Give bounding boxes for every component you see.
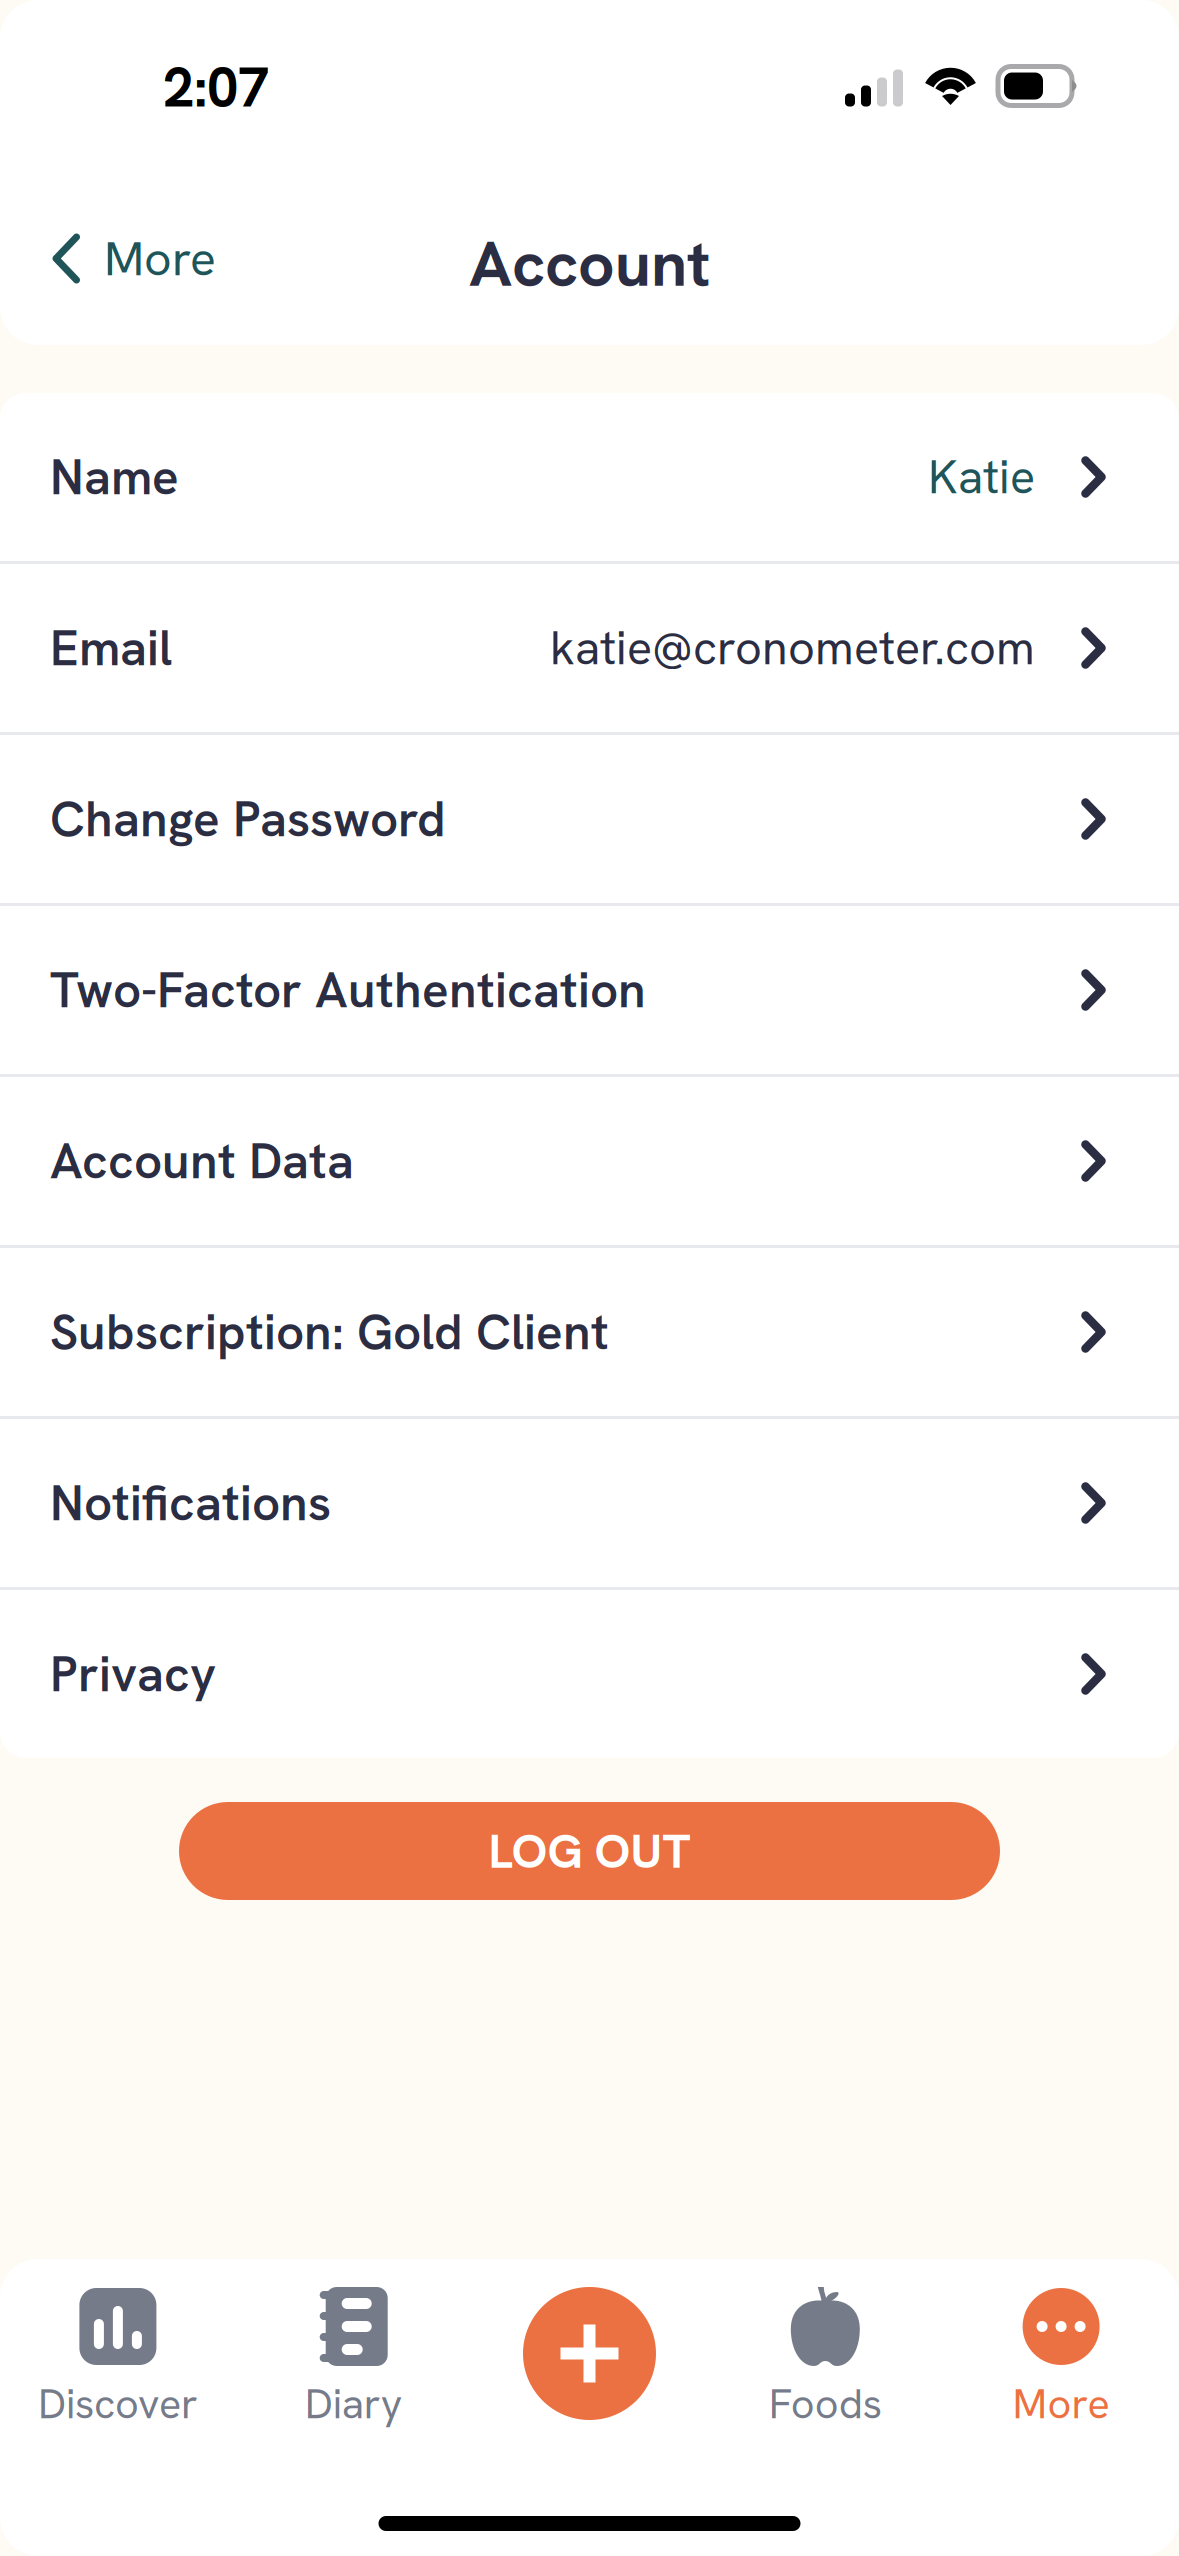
button[interactable]: Privacy bbox=[0, 1590, 1179, 1758]
staticText: katie@cronometer.com bbox=[550, 618, 1035, 678]
button[interactable]: Add entry bbox=[472, 2287, 707, 2447]
button[interactable]: Change Password bbox=[0, 735, 1179, 906]
staticText: Two-Factor Authentication bbox=[50, 958, 646, 1022]
staticText: Foods bbox=[769, 2377, 882, 2431]
staticText: Diary bbox=[305, 2377, 403, 2431]
staticText: Account bbox=[469, 222, 710, 305]
staticText: Subscription: Gold Client bbox=[50, 1300, 609, 1364]
staticText: Discover bbox=[38, 2377, 198, 2431]
staticText: Katie bbox=[928, 447, 1035, 507]
button[interactable]: Discover bbox=[0, 2287, 236, 2447]
staticText: Notifications bbox=[50, 1471, 331, 1535]
staticText: Email bbox=[50, 616, 172, 680]
button[interactable]: Two-Factor Authentication bbox=[0, 906, 1179, 1077]
staticText: More bbox=[104, 227, 216, 290]
button[interactable]: Account Data bbox=[0, 1077, 1179, 1248]
staticText: LOG OUT bbox=[488, 1820, 690, 1882]
button[interactable]: Foods bbox=[707, 2287, 943, 2447]
button[interactable]: More bbox=[943, 2287, 1179, 2447]
staticText: Name bbox=[50, 445, 179, 509]
button[interactable]: More bbox=[0, 203, 256, 313]
button[interactable]: Diary bbox=[236, 2287, 472, 2447]
staticText: Privacy bbox=[50, 1642, 216, 1706]
staticText: Change Password bbox=[50, 787, 446, 851]
button[interactable]: Email bbox=[0, 564, 1179, 735]
staticText: 2:07 bbox=[163, 50, 269, 123]
button[interactable]: Name bbox=[0, 393, 1179, 564]
button[interactable]: LOG OUT bbox=[179, 1802, 1000, 1900]
staticText: More bbox=[1013, 2377, 1110, 2431]
button[interactable]: Subscription: Gold Client bbox=[0, 1248, 1179, 1419]
staticText: Account Data bbox=[50, 1129, 354, 1193]
button[interactable]: Notifications bbox=[0, 1419, 1179, 1590]
